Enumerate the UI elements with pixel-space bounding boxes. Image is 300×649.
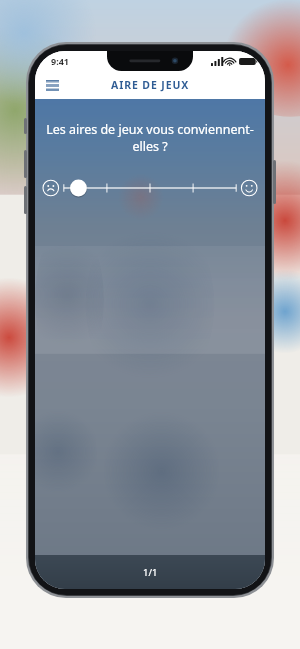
other: Volume down: [24, 186, 27, 214]
button[interactable]: Menu: [40, 73, 64, 97]
other: Silent switch: [24, 118, 27, 134]
staticText: 1/1: [143, 566, 158, 579]
other: Power: [273, 160, 276, 204]
button[interactable]: Très insatisfait: [42, 178, 62, 198]
staticText: AIRE DE JEUX: [111, 78, 190, 92]
staticText: 9:41: [51, 55, 69, 67]
staticText: Les aires de jeux vous conviennent- elle…: [43, 121, 257, 155]
button[interactable]: Note de satisfaction: [42, 175, 258, 201]
button[interactable]: 1/1: [35, 555, 265, 589]
other: Volume up: [24, 150, 27, 178]
button[interactable]: Très satisfait: [238, 178, 258, 198]
